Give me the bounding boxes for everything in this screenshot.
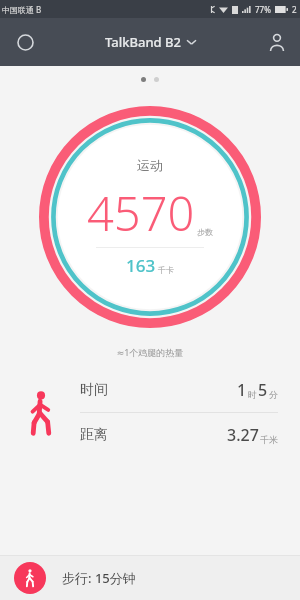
button[interactable]: 时间	[80, 368, 278, 412]
staticText: 77%	[255, 4, 271, 15]
button[interactable]: Profile	[258, 23, 296, 61]
button[interactable]: 步行: 15分钟	[0, 556, 300, 600]
staticText: 163	[126, 254, 156, 277]
staticText: 1	[237, 379, 247, 401]
staticText: 千卡	[158, 265, 174, 275]
staticText: 3.27	[227, 424, 259, 446]
staticText: 千米	[260, 434, 278, 445]
staticText: 步行: 15分钟	[62, 569, 136, 587]
staticText: 运动	[137, 157, 163, 173]
staticText: 5	[258, 379, 268, 401]
staticText: 距离	[80, 426, 108, 444]
staticText: ≈1个鸡腿的热量	[0, 346, 300, 358]
button[interactable]: Menu	[6, 23, 44, 61]
button[interactable]: TalkBand B2	[99, 27, 202, 57]
staticText: 分	[269, 389, 278, 400]
staticText: 2	[292, 4, 297, 15]
staticText: 4570	[87, 181, 195, 245]
staticText: TalkBand B2	[105, 33, 181, 51]
staticText: 时间	[80, 381, 108, 399]
staticText: 步数	[197, 227, 213, 237]
button[interactable]: 运动	[39, 106, 261, 328]
staticText: 中国联通 B	[2, 4, 42, 15]
staticText: 时	[248, 389, 257, 400]
button[interactable]: 距离	[80, 413, 278, 457]
